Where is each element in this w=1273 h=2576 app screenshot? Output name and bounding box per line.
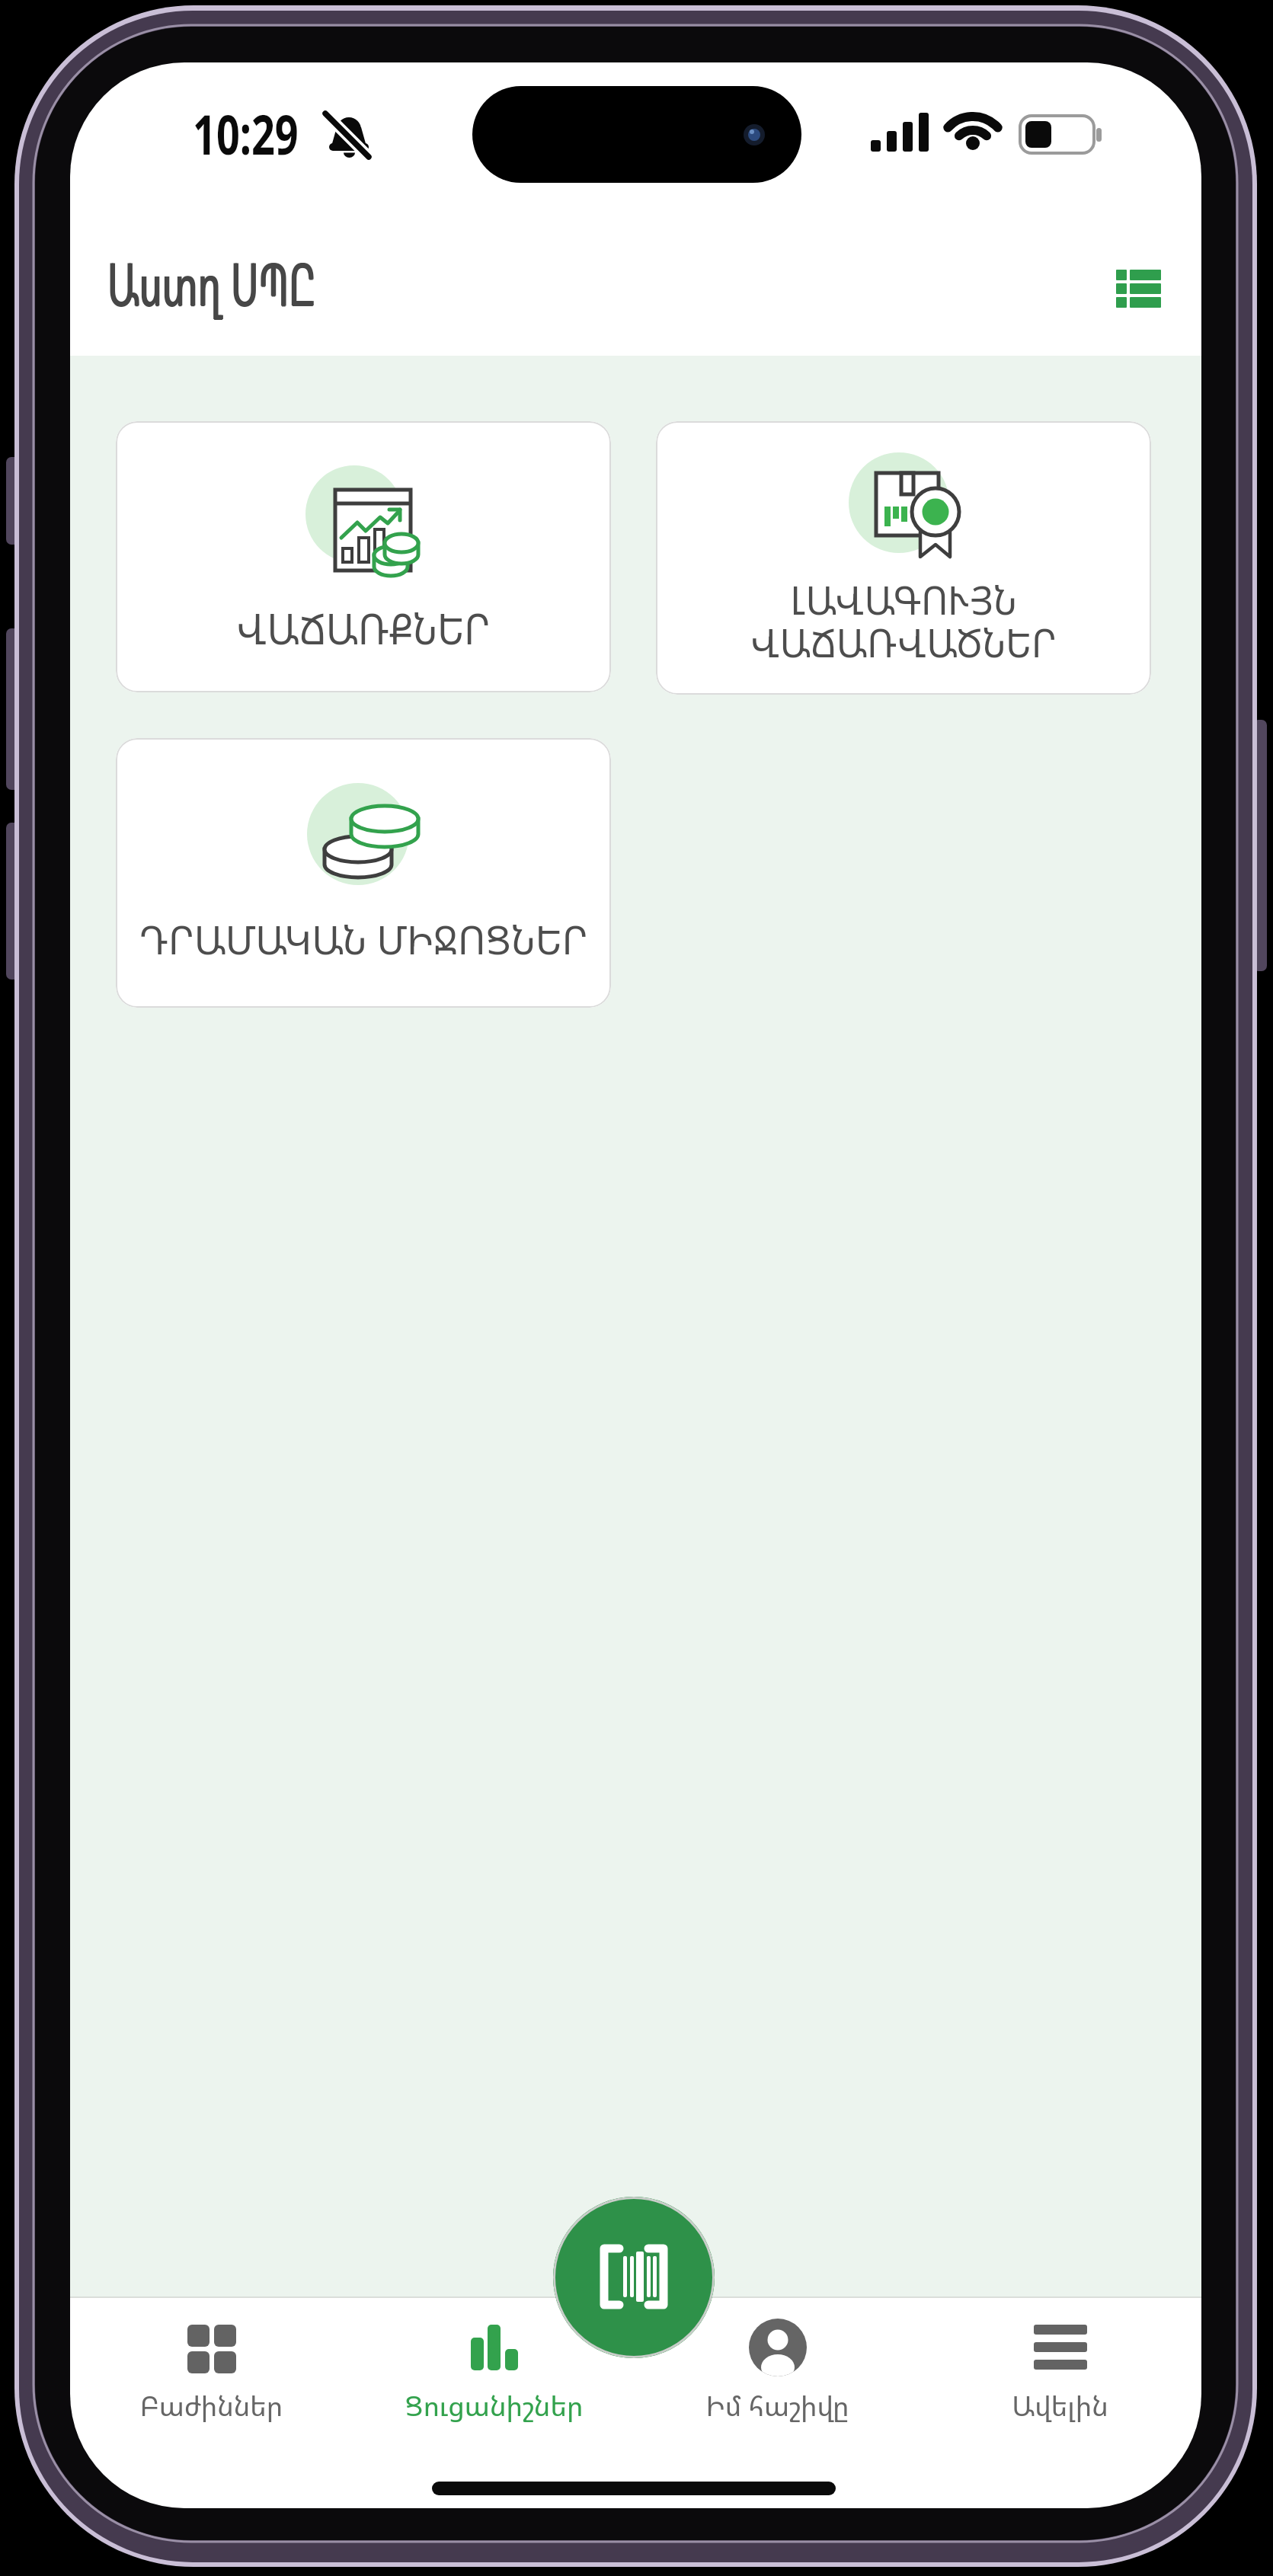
staticText: Իմ հաշիվը: [636, 2387, 919, 2424]
button[interactable]: ԴՐԱՄԱԿԱՆ ՄԻՋՈՑՆԵՐ: [116, 738, 611, 1008]
staticText: Աստղ ՍՊԸ: [108, 242, 317, 323]
staticText: Ցուցանիշներ: [353, 2387, 635, 2424]
button[interactable]: Ցուցանիշներ: [353, 2302, 635, 2492]
button[interactable]: Իմ հաշիվը: [636, 2302, 919, 2492]
staticText: Բաժիններ: [70, 2387, 353, 2424]
staticText: Աստղ ՍՊԸ: [107, 242, 315, 323]
button[interactable]: ՎԱՃԱՌՔՆԵՐ: [116, 421, 611, 692]
button[interactable]: Բաժիններ: [70, 2302, 353, 2492]
staticText: Ավելին: [919, 2387, 1201, 2424]
button[interactable]: [553, 2197, 715, 2358]
staticText: ԼԱՎԱԳՈՒՅՆ ՎԱՃԱՌՎԱԾՆԵՐ: [671, 572, 1136, 669]
button[interactable]: [1100, 249, 1178, 327]
staticText: ՎԱՃԱՌՔՆԵՐ: [134, 599, 593, 657]
button[interactable]: ԼԱՎԱԳՈՒՅՆ ՎԱՃԱՌՎԱԾՆԵՐ: [656, 421, 1151, 695]
staticText: Աստղ ՍՊԸ: [107, 243, 316, 324]
staticText: ԴՐԱՄԱԿԱՆ ՄԻՋՈՑՆԵՐ: [124, 912, 603, 966]
staticText: 10:29: [193, 96, 298, 171]
button[interactable]: Ավելին: [919, 2302, 1201, 2492]
